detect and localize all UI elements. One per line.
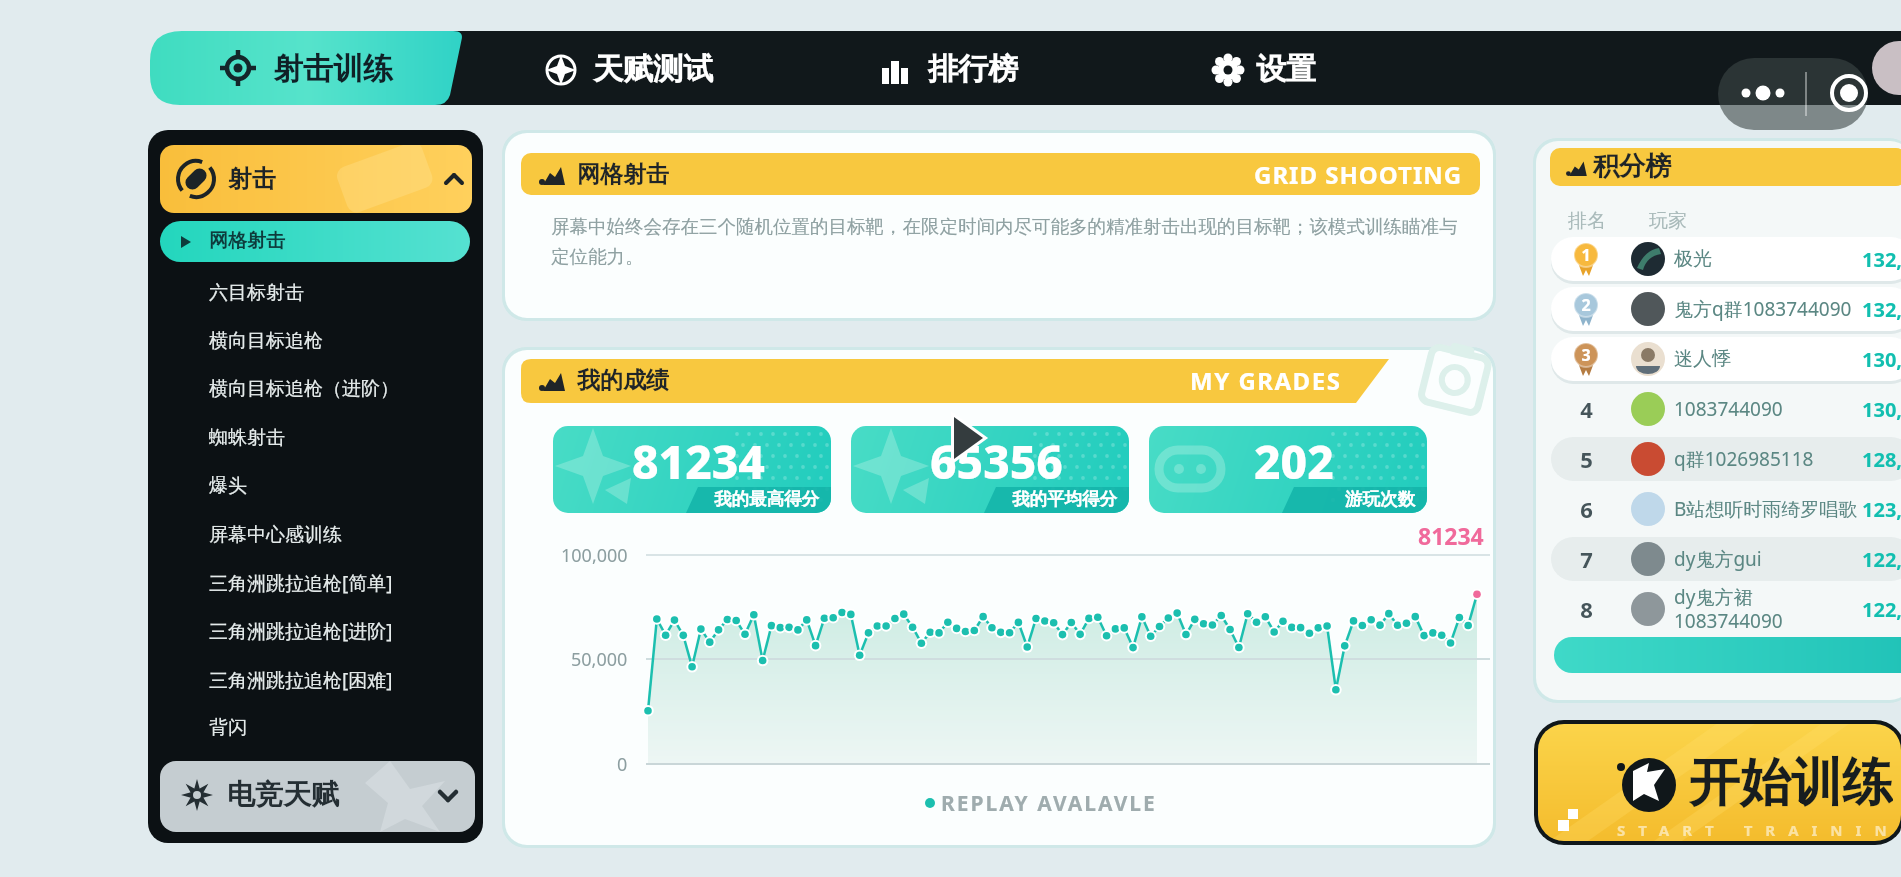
staticText: 202: [1254, 430, 1334, 493]
button[interactable]: [160, 416, 470, 460]
button[interactable]: [1534, 720, 1901, 845]
staticText: 81234: [1418, 520, 1484, 551]
button[interactable]: [160, 464, 470, 508]
staticText: 三角洲跳拉追枪[简单]: [209, 570, 393, 596]
staticText: 鬼方q群1083744090: [1674, 296, 1852, 322]
staticText: 六目标射击: [209, 281, 304, 305]
staticText: 8: [1580, 594, 1593, 624]
button[interactable]: [160, 561, 470, 605]
staticText: START TRAINING: [1617, 820, 1901, 840]
staticText: 5: [1580, 444, 1593, 474]
staticText: 130,958: [1862, 346, 1901, 373]
staticText: 132,845: [1862, 246, 1901, 273]
staticText: 开始训练: [1689, 751, 1893, 811]
staticText: 7: [1580, 544, 1593, 574]
staticText: dy鬼方裙: [1674, 584, 1753, 610]
button[interactable]: [540, 40, 730, 96]
staticText: GRID SHOOTING: [1254, 158, 1463, 191]
staticText: 爆头: [209, 474, 247, 498]
staticText: MY GRADES: [1190, 364, 1342, 397]
staticText: 65356: [930, 430, 1063, 493]
button[interactable]: [160, 761, 475, 832]
button[interactable]: [160, 706, 470, 750]
staticText: 屏幕中心感训练: [209, 523, 342, 547]
staticText: 122,345: [1862, 596, 1901, 623]
staticText: 横向目标追枪（进阶）: [209, 377, 399, 401]
staticText: 设置: [1256, 50, 1316, 88]
button[interactable]: [1551, 387, 1901, 431]
staticText: 4: [1580, 394, 1593, 424]
staticText: 我的平均得分: [1012, 488, 1117, 510]
staticText: q群1026985118: [1674, 446, 1814, 472]
button[interactable]: 81234: [553, 426, 831, 513]
button[interactable]: [1205, 40, 1335, 96]
button[interactable]: 202: [1149, 426, 1427, 513]
button[interactable]: [875, 40, 1025, 96]
staticText: 排名: [1568, 209, 1606, 233]
staticText: 2: [1581, 294, 1591, 316]
staticText: 网格射击: [209, 229, 285, 253]
button[interactable]: [160, 609, 470, 653]
staticText: 电竞天赋: [227, 777, 339, 812]
staticText: 128,774: [1862, 446, 1901, 473]
staticText: 积分榜: [1593, 150, 1671, 183]
staticText: 迷人悸: [1674, 347, 1731, 371]
staticText: 射击训练: [273, 50, 393, 88]
staticText: 天赋测试: [593, 50, 713, 88]
button[interactable]: [1551, 537, 1901, 581]
button[interactable]: [1551, 437, 1901, 481]
button[interactable]: [160, 513, 470, 557]
staticText: 1083744090: [1674, 396, 1783, 422]
button[interactable]: [1551, 487, 1901, 531]
staticText: 81234: [632, 430, 765, 493]
staticText: 50,000: [571, 647, 628, 672]
button[interactable]: [1551, 587, 1901, 631]
staticText: dy鬼方gui: [1674, 546, 1762, 572]
staticText: 游玩次数: [1345, 488, 1415, 510]
staticText: 3: [1581, 344, 1591, 366]
staticText: 132,201: [1862, 296, 1901, 323]
button[interactable]: 65356: [851, 426, 1129, 513]
staticText: 极光: [1674, 247, 1712, 271]
staticText: 射击: [228, 164, 276, 194]
button[interactable]: [160, 271, 470, 315]
staticText: 1083744090: [1674, 608, 1783, 634]
button[interactable]: [160, 658, 470, 702]
button[interactable]: [160, 319, 470, 363]
button[interactable]: [1551, 287, 1901, 331]
staticText: 背闪: [209, 716, 247, 740]
button[interactable]: [1718, 58, 1868, 130]
staticText: 三角洲跳拉追枪[进阶]: [209, 618, 393, 644]
staticText: B站想听时雨绮罗唱歌: [1674, 496, 1858, 522]
staticText: 三角洲跳拉追枪[困难]: [209, 667, 393, 693]
staticText: 100,000: [561, 543, 628, 568]
button[interactable]: [1551, 337, 1901, 381]
staticText: 定位能力。: [551, 245, 644, 268]
staticText: 屏幕中始终会存在三个随机位置的目标靶，在限定时间内尽可能多的精准射击出现的目标靶…: [551, 215, 1458, 238]
staticText: 玩家: [1649, 209, 1687, 233]
button[interactable]: [150, 31, 465, 105]
staticText: 排行榜: [928, 50, 1018, 88]
staticText: REPLAY AVALAVLE: [941, 789, 1157, 818]
staticText: 网格射击: [577, 160, 669, 189]
staticText: 6: [1580, 494, 1593, 524]
staticText: 130,101: [1862, 396, 1901, 423]
button[interactable]: [160, 221, 470, 262]
staticText: 我的成绩: [577, 366, 669, 395]
staticText: 蜘蛛射击: [209, 426, 285, 450]
button[interactable]: [160, 145, 472, 213]
staticText: 123,456: [1862, 496, 1901, 523]
staticText: 我的最高得分: [714, 488, 819, 510]
staticText: 横向目标追枪: [209, 329, 323, 353]
staticText: 122,901: [1862, 546, 1901, 573]
button[interactable]: [1551, 237, 1901, 281]
staticText: 0: [617, 752, 628, 777]
staticText: 1: [1581, 244, 1591, 266]
button[interactable]: [160, 367, 470, 411]
